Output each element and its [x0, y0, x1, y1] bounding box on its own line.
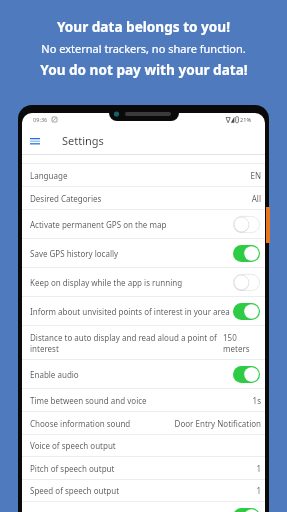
button[interactable]: Choose information sound [22, 412, 265, 434]
staticText: 150 meters [223, 332, 250, 354]
button[interactable]: Speed of speech output [22, 480, 265, 501]
button[interactable]: Activate permanent GPS on the map [22, 210, 265, 238]
button[interactable]: Voice of speech output [22, 435, 265, 456]
button[interactable]: Toggle [233, 303, 260, 320]
staticText: 1s [252, 395, 261, 406]
staticText: Activate permanent GPS on the map [30, 219, 231, 230]
staticText: Pitch of speech output [30, 463, 252, 474]
button[interactable]: Toggle [233, 508, 260, 512]
button[interactable]: Save GPS history locally [22, 239, 265, 267]
staticText: 09:36 [33, 116, 48, 124]
staticText: Desired Categories [30, 193, 247, 204]
button[interactable]: Toggle [233, 216, 260, 233]
staticText: Distance to auto display and read aloud … [30, 332, 219, 354]
button[interactable]: Toggle [233, 366, 260, 383]
staticText: Settings [62, 133, 104, 148]
staticText: You do not pay with your data! [40, 60, 248, 79]
staticText: EN [250, 170, 261, 181]
button[interactable]: Enable audio [22, 360, 265, 388]
button[interactable]: Keep on display while the app is running [22, 268, 265, 296]
staticText: Door Entry Notification [174, 418, 261, 429]
staticText: Language [30, 170, 246, 181]
staticText: Your data belongs to you! [57, 17, 230, 36]
staticText: 1 [256, 485, 261, 496]
staticText: Choose information sound [30, 418, 170, 429]
staticText: Enable audio [30, 369, 231, 380]
staticText: Keep on display while the app is running [30, 277, 231, 288]
staticText: Inform about unvisited points of interes… [30, 306, 231, 317]
button[interactable]: Desired Categories [22, 187, 265, 209]
button[interactable]: Time between sound and voice [22, 389, 265, 411]
staticText: 21% [240, 116, 252, 124]
staticText: Speed of speech output [30, 485, 252, 496]
button[interactable]: Pitch of speech output [22, 457, 265, 479]
staticText: No external trackers, no share function. [41, 41, 246, 56]
staticText: 1 [256, 463, 261, 474]
button[interactable]: Toggle [233, 274, 260, 291]
button[interactable]: Open navigation menu [24, 130, 46, 152]
button[interactable]: Inform about unvisited points of interes… [22, 297, 265, 325]
button[interactable]: Language [22, 164, 265, 186]
staticText: Time between sound and voice [30, 395, 248, 406]
button[interactable]: Toggle [22, 502, 265, 512]
staticText: All [251, 193, 261, 204]
staticText: Save GPS history locally [30, 248, 231, 259]
button[interactable]: Toggle [233, 245, 260, 262]
button[interactable]: Distance to auto display and read aloud … [22, 326, 265, 359]
staticText: Voice of speech output [30, 440, 261, 451]
